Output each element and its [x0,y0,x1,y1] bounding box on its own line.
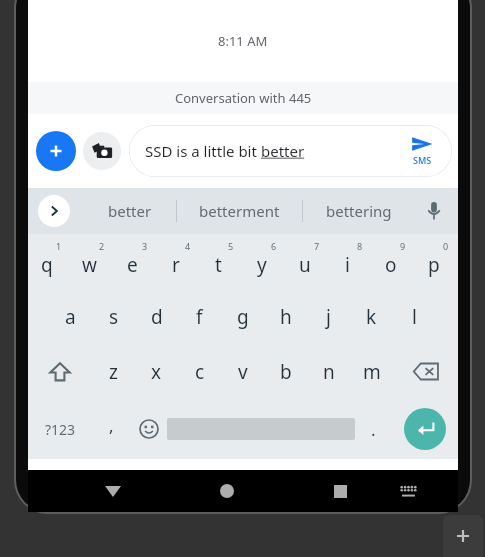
staticText: r [172,252,180,278]
button[interactable]: Switch keyboard [376,470,440,512]
staticText: Conversation with 445 [175,89,312,107]
staticText: m [363,359,381,385]
staticText: 5 [228,240,234,252]
staticText: k [366,304,377,330]
staticText: better [261,141,305,161]
button[interactable]: g [221,289,264,344]
staticText: l [412,304,417,330]
staticText: z [109,359,118,385]
staticText: betterment [199,201,280,221]
button[interactable]: More suggestions [38,195,70,227]
button[interactable]: o [372,234,415,289]
button[interactable]: n [307,344,350,399]
button[interactable]: s [92,289,135,344]
staticText: 2 [99,240,105,252]
button[interactable]: f [178,289,221,344]
button[interactable]: Home [191,470,262,512]
staticText: bettering [326,201,392,221]
staticText: ?123 [45,420,76,439]
staticText: v [238,359,248,385]
button[interactable]: r [157,234,200,289]
button[interactable]: j [307,289,350,344]
button[interactable]: Send SMS [400,136,444,166]
button[interactable]: q [28,234,71,289]
staticText: 4 [185,240,191,252]
button[interactable]: Recent apps [305,470,376,512]
staticText: g [237,304,249,330]
staticText: a [65,304,76,330]
staticText: 3 [142,240,148,252]
button[interactable]: t [200,234,243,289]
staticText: SMS [413,154,432,166]
staticText: i [345,252,350,278]
button[interactable]: c [178,344,221,399]
staticText: x [151,359,162,385]
button[interactable]: bettering [303,188,414,234]
button[interactable]: p [415,234,458,289]
button[interactable]: a [49,289,92,344]
button[interactable]: Enter [392,399,458,459]
staticText: f [196,304,203,330]
button[interactable]: Emoji [130,399,167,459]
staticText: p [428,252,440,278]
button[interactable]: b [264,344,307,399]
staticText: . [371,418,376,441]
staticText: d [151,304,163,330]
staticText: e [127,252,138,278]
button[interactable]: better [84,188,176,234]
staticText: o [385,252,397,278]
button[interactable]: Back [77,470,148,512]
button[interactable]: Add attachment [36,131,76,171]
button[interactable]: h [264,289,307,344]
staticText: 6 [271,240,277,252]
button[interactable]: betterment [177,188,302,234]
button[interactable]: SSD is a little bit [129,125,452,177]
button[interactable]: x [135,344,178,399]
button[interactable]: k [350,289,393,344]
staticText: b [280,359,292,385]
button[interactable]: Backspace [393,344,458,399]
staticText: h [280,304,292,330]
button[interactable]: y [243,234,286,289]
staticText: j [326,304,331,330]
staticText: u [299,252,311,278]
button[interactable]: Camera [83,132,121,170]
staticText: , [109,414,114,437]
staticText: better [108,201,152,221]
staticText: n [323,359,335,385]
staticText: y [257,252,267,278]
button[interactable]: . [355,399,392,459]
button[interactable]: v [221,344,264,399]
staticText: c [195,359,205,385]
button[interactable]: Shift [28,344,92,399]
button[interactable]: Space [167,417,355,441]
button[interactable]: d [135,289,178,344]
button[interactable]: Voice input [414,188,454,234]
staticText: 7 [314,240,320,252]
staticText: t [215,252,222,278]
button[interactable]: Add [443,515,483,557]
staticText: 1 [56,240,62,252]
staticText: s [109,304,119,330]
staticText: w [82,252,97,278]
button[interactable]: , [93,399,130,459]
button[interactable]: l [393,289,436,344]
button[interactable]: ?123 [28,399,93,459]
staticText: 8 [357,240,363,252]
staticText: q [41,252,53,278]
button[interactable]: w [71,234,114,289]
button[interactable]: z [92,344,135,399]
staticText: 8:11 AM [218,32,268,50]
button[interactable]: u [286,234,329,289]
button[interactable]: i [329,234,372,289]
staticText: SSD is a little bit [145,141,261,161]
staticText: 0 [443,240,449,252]
button[interactable]: m [350,344,393,399]
staticText: 9 [400,240,406,252]
button[interactable]: e [114,234,157,289]
